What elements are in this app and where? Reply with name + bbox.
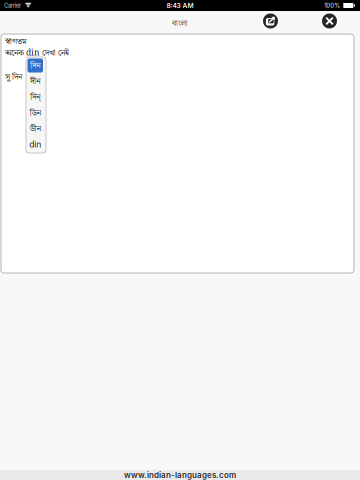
button[interactable]: দিন [27,58,44,73]
button[interactable]: দীন [27,73,44,89]
staticText: স্বাগতম [5,35,27,48]
staticText: Carrier [4,2,21,9]
staticText: ডীন [30,122,41,135]
staticText: দিন [30,59,40,72]
button[interactable]: দিন্ [27,89,44,105]
staticText: সু দিন [5,70,22,84]
staticText: www.indian-languages.com [124,470,236,480]
staticText: দীন [30,74,40,88]
staticText: অনেক din দেখা নেই [5,46,69,60]
button[interactable]: din [27,137,44,152]
button[interactable]: Close [322,13,337,28]
staticText: 100% [324,2,340,9]
button[interactable]: ডিন [27,105,44,121]
button[interactable]: Share [263,13,278,28]
staticText: ডিন [30,106,41,120]
staticText: 8:43 AM [166,1,193,10]
staticText: বাংলা [172,17,188,30]
staticText: দিন্ [30,90,40,104]
staticText: din [29,139,41,150]
button[interactable]: ডীন [27,121,44,137]
